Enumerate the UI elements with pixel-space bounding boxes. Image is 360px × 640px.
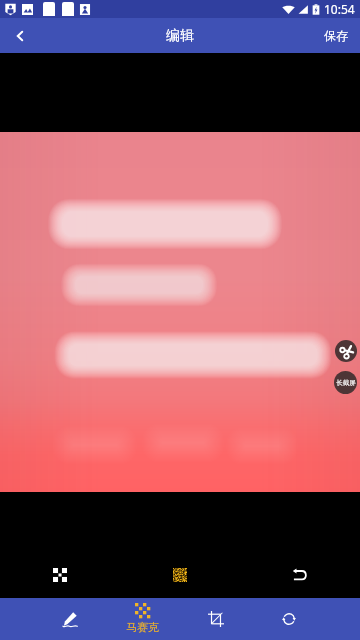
staticText: 保存	[324, 28, 348, 43]
button[interactable]: Crop	[179, 598, 252, 640]
staticText: 长截屏	[336, 379, 356, 387]
button[interactable]: Undo	[240, 552, 360, 598]
button[interactable]: Mosaic size	[0, 552, 120, 598]
button[interactable]: Back	[0, 18, 40, 53]
staticText: 10:54	[324, 1, 355, 17]
button[interactable]: 长截屏	[334, 371, 357, 394]
button[interactable]: Rotate	[252, 598, 325, 640]
button[interactable]: Mosaic style	[120, 552, 240, 598]
button[interactable]: 马赛克	[106, 598, 179, 640]
button[interactable]: Draw	[34, 598, 106, 640]
staticText: 马赛克	[126, 620, 159, 634]
button[interactable]: 保存	[312, 28, 360, 43]
staticText: 编辑	[166, 27, 194, 45]
button[interactable]: Cut	[335, 340, 357, 362]
